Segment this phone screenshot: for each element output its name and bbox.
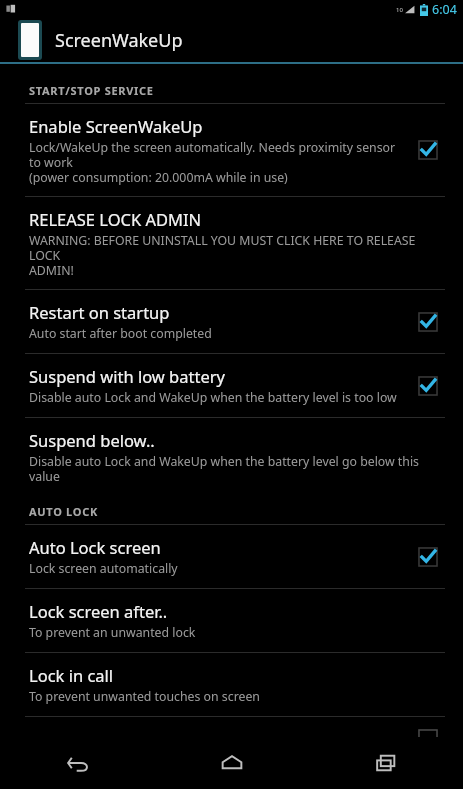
button[interactable]: RELEASE LOCK ADMIN: [0, 197, 463, 289]
staticText: RELEASE LOCK ADMIN: [29, 208, 202, 230]
button[interactable]: Lock in landscape mode: [0, 717, 463, 737]
button[interactable]: Lock screen after..: [0, 589, 463, 652]
staticText: Auto Lock screen: [29, 536, 161, 558]
staticText: Auto start after boot completed: [29, 325, 212, 342]
staticText: Disable auto Lock and WakeUp when the ba…: [29, 389, 397, 406]
button[interactable]: Lock in call: [0, 653, 463, 716]
button[interactable]: Enable ScreenWakeUp: [0, 104, 463, 196]
staticText: AUTO LOCK: [29, 504, 98, 519]
staticText: ScreenWakeUp: [55, 28, 183, 53]
staticText: Suspend below..: [29, 429, 155, 451]
button[interactable]: Auto Lock screen: [0, 525, 463, 588]
button[interactable]: Home: [155, 737, 309, 789]
staticText: Lock/WakeUp the screen automatically. Ne…: [29, 139, 399, 185]
staticText: Restart on startup: [29, 301, 170, 323]
button[interactable]: Restart on startup: [0, 290, 463, 353]
staticText: To prevent unwanted touches on screen: [29, 688, 260, 705]
staticText: Disable auto Lock and WakeUp when the ba…: [29, 453, 433, 484]
staticText: Enable ScreenWakeUp: [29, 115, 203, 137]
button[interactable]: Suspend with low battery: [0, 354, 463, 417]
staticText: START/STOP SERVICE: [29, 83, 154, 98]
staticText: 10: [396, 6, 403, 14]
staticText: To prevent an unwanted lock: [29, 624, 196, 641]
staticText: Suspend with low battery: [29, 365, 225, 387]
button[interactable]: Back: [0, 737, 155, 789]
staticText: WARNING: BEFORE UNINSTALL YOU MUST CLICK…: [29, 232, 433, 278]
staticText: Lock screen after..: [29, 600, 168, 622]
button[interactable]: Recent apps: [309, 737, 463, 789]
staticText: Lock in call: [29, 664, 114, 686]
staticText: Lock screen automatically: [29, 560, 178, 577]
staticText: 6:04: [432, 1, 457, 18]
button[interactable]: Suspend below..: [0, 418, 463, 495]
